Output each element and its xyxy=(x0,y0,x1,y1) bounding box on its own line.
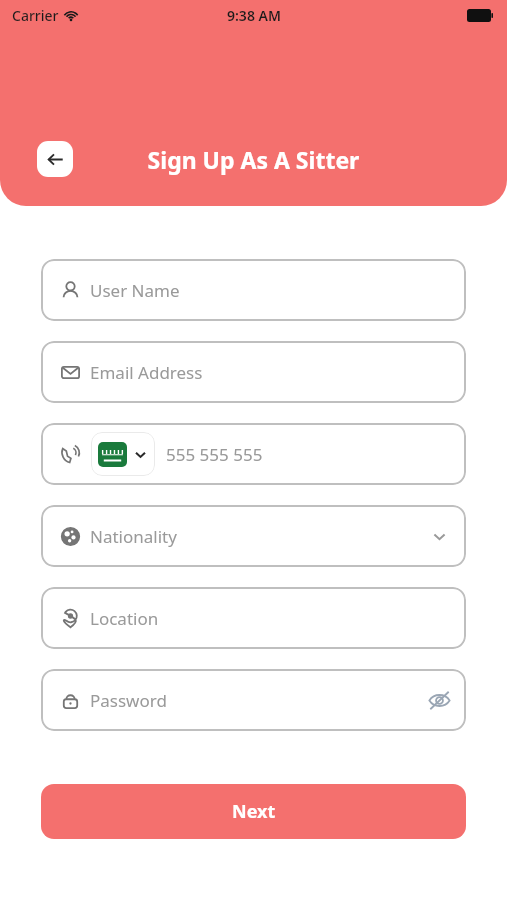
staticText: Password xyxy=(90,689,167,712)
button[interactable]: Select country code xyxy=(41,423,466,485)
staticText: Email Address xyxy=(90,361,203,384)
button[interactable]: Password xyxy=(41,669,466,731)
staticText: 555 555 555 xyxy=(166,443,263,466)
staticText: User Name xyxy=(90,279,180,302)
button[interactable]: Show password xyxy=(412,669,466,731)
button[interactable]: Location xyxy=(41,587,466,649)
button[interactable]: Nationality xyxy=(41,505,466,567)
staticText: Nationality xyxy=(90,525,177,548)
staticText: Sign Up As A Sitter xyxy=(0,144,507,175)
staticText: Location xyxy=(90,607,159,630)
staticText: Next xyxy=(232,799,276,824)
button[interactable]: Email Address xyxy=(41,341,466,403)
button[interactable]: Next xyxy=(41,784,466,839)
staticText: Carrier xyxy=(12,6,59,25)
staticText: 9:38 AM xyxy=(227,6,281,25)
button[interactable]: Back xyxy=(37,141,73,177)
button[interactable]: Select country code xyxy=(98,432,148,476)
button[interactable]: User Name xyxy=(41,259,466,321)
